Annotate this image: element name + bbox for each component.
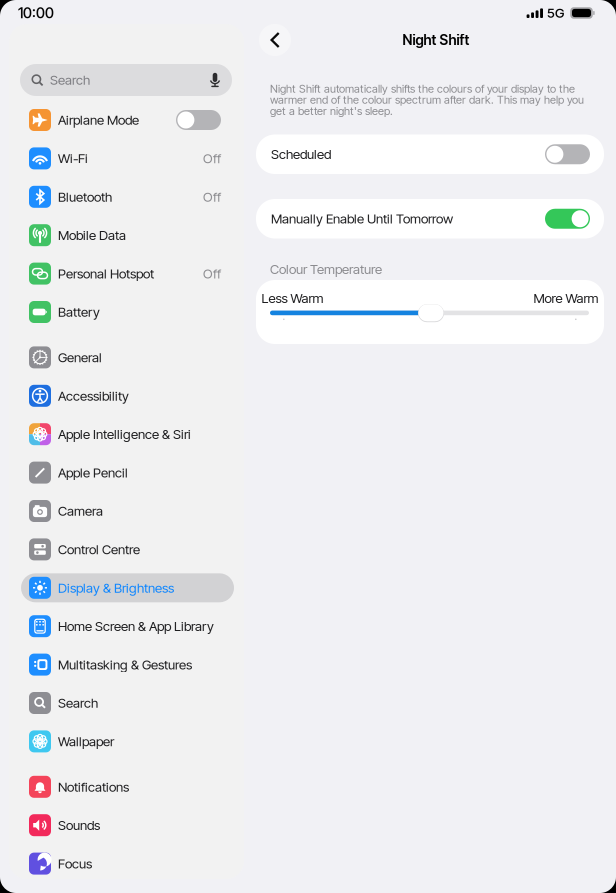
- button[interactable]: Display & Brightness: [21, 573, 234, 602]
- button[interactable]: Control Centre: [21, 535, 234, 564]
- staticText: 10:00: [18, 4, 54, 22]
- staticText: Personal Hotspot: [58, 265, 154, 282]
- staticText: Off: [203, 189, 221, 205]
- button[interactable]: Focus: [21, 849, 234, 878]
- button[interactable]: Wallpaper: [21, 727, 234, 756]
- staticText: Colour Temperature: [270, 261, 382, 277]
- button[interactable]: Back: [259, 24, 291, 56]
- button[interactable]: Notifications: [21, 772, 234, 801]
- button[interactable]: Search: [21, 688, 234, 717]
- button[interactable]: Mobile Data: [21, 221, 234, 250]
- button[interactable]: Personal Hotspot: [21, 259, 234, 288]
- staticText: Off: [203, 265, 221, 282]
- button[interactable]: Scheduled: [256, 134, 604, 174]
- staticText: Home Screen & App Library: [58, 618, 214, 634]
- button[interactable]: Battery: [21, 297, 234, 326]
- staticText: Mobile Data: [58, 227, 126, 243]
- staticText: Search: [58, 695, 98, 711]
- staticText: Less Warm: [261, 290, 323, 306]
- staticText: Scheduled: [271, 146, 331, 162]
- staticText: Off: [203, 150, 221, 166]
- staticText: Control Centre: [58, 541, 140, 557]
- staticText: Bluetooth: [58, 189, 112, 205]
- staticText: Manually Enable Until Tomorrow: [271, 211, 453, 227]
- staticText: Notifications: [58, 779, 129, 795]
- button[interactable]: Accessibility: [21, 381, 234, 410]
- button[interactable]: Airplane Mode: [21, 105, 234, 134]
- button[interactable]: Search: [20, 64, 232, 96]
- staticText: More Warm: [533, 290, 598, 306]
- button[interactable]: Apple Pencil: [21, 458, 234, 487]
- button[interactable]: Manually Enable Until Tomorrow: [256, 199, 604, 238]
- staticText: 5G: [547, 5, 564, 21]
- button[interactable]: Bluetooth: [21, 182, 234, 211]
- staticText: Apple Intelligence & Siri: [58, 426, 191, 442]
- button[interactable]: General: [21, 343, 234, 372]
- staticText: Accessibility: [58, 388, 129, 404]
- staticText: Focus: [58, 855, 92, 872]
- button[interactable]: Home Screen & App Library: [21, 612, 234, 641]
- staticText: General: [58, 349, 102, 365]
- staticText: Search: [50, 72, 90, 88]
- staticText: Camera: [58, 503, 103, 519]
- staticText: Apple Pencil: [58, 464, 128, 481]
- button[interactable]: Multitasking & Gestures: [21, 650, 234, 679]
- button[interactable]: Apple Intelligence & Siri: [21, 420, 234, 449]
- button[interactable]: Camera: [21, 496, 234, 525]
- staticText: Sounds: [58, 817, 100, 833]
- staticText: Display & Brightness: [58, 580, 174, 596]
- staticText: Wi-Fi: [58, 150, 88, 166]
- staticText: Airplane Mode: [58, 112, 139, 128]
- button[interactable]: Sounds: [21, 811, 234, 840]
- staticText: Multitasking & Gestures: [58, 656, 192, 673]
- button[interactable]: Wi-Fi: [21, 144, 234, 173]
- staticText: Wallpaper: [58, 733, 114, 749]
- staticText: Night Shift automatically shifts the col…: [270, 82, 584, 118]
- staticText: Battery: [58, 304, 100, 320]
- staticText: Night Shift: [402, 31, 469, 48]
